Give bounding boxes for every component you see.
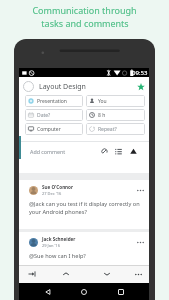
staticText: @Jack can you test if it display correct… [29,200,146,216]
button[interactable]: Checklist [113,146,124,157]
button[interactable]: Mark complete [21,79,36,94]
button[interactable]: Home [76,284,92,300]
button[interactable]: Google Drive [128,146,139,157]
staticText: Sue O'Connor [42,184,74,190]
button[interactable]: More options [135,237,146,248]
button[interactable]: Next field [86,265,127,283]
button[interactable]: Recent apps [113,284,129,300]
button[interactable]: Previous field [45,265,86,283]
button[interactable]: Tab [19,265,45,283]
button[interactable]: Presentation [25,95,83,107]
button[interactable]: Back [40,284,56,300]
staticText: 8 h [98,112,106,119]
staticText: Layout Design [39,82,86,92]
staticText: You [98,98,107,105]
button[interactable]: 8 h [86,109,145,121]
staticText: Jack Schneider [42,236,76,242]
staticText: Add comment [30,148,66,155]
staticText: Computer [37,126,61,133]
staticText: @Sue how can I help? [29,252,86,260]
staticText: 29 Jan '16 [42,243,60,248]
staticText: 27 Dec '16 [42,191,62,196]
button[interactable]: You [86,95,145,107]
staticText: Repeat? [98,126,117,133]
staticText: Presentation [37,98,67,105]
staticText: Communication through [32,4,137,16]
button[interactable]: Star [134,80,147,93]
staticText: 09:53 [132,69,148,77]
staticText: tasks and comments [41,17,129,29]
button[interactable]: Attach file [99,146,110,157]
button[interactable]: Computer [25,123,83,135]
button[interactable]: More [127,265,149,283]
button[interactable]: Repeat? [86,123,145,135]
staticText: Date? [37,112,51,119]
button[interactable]: Date? [25,109,83,121]
button[interactable]: More options [135,185,146,196]
